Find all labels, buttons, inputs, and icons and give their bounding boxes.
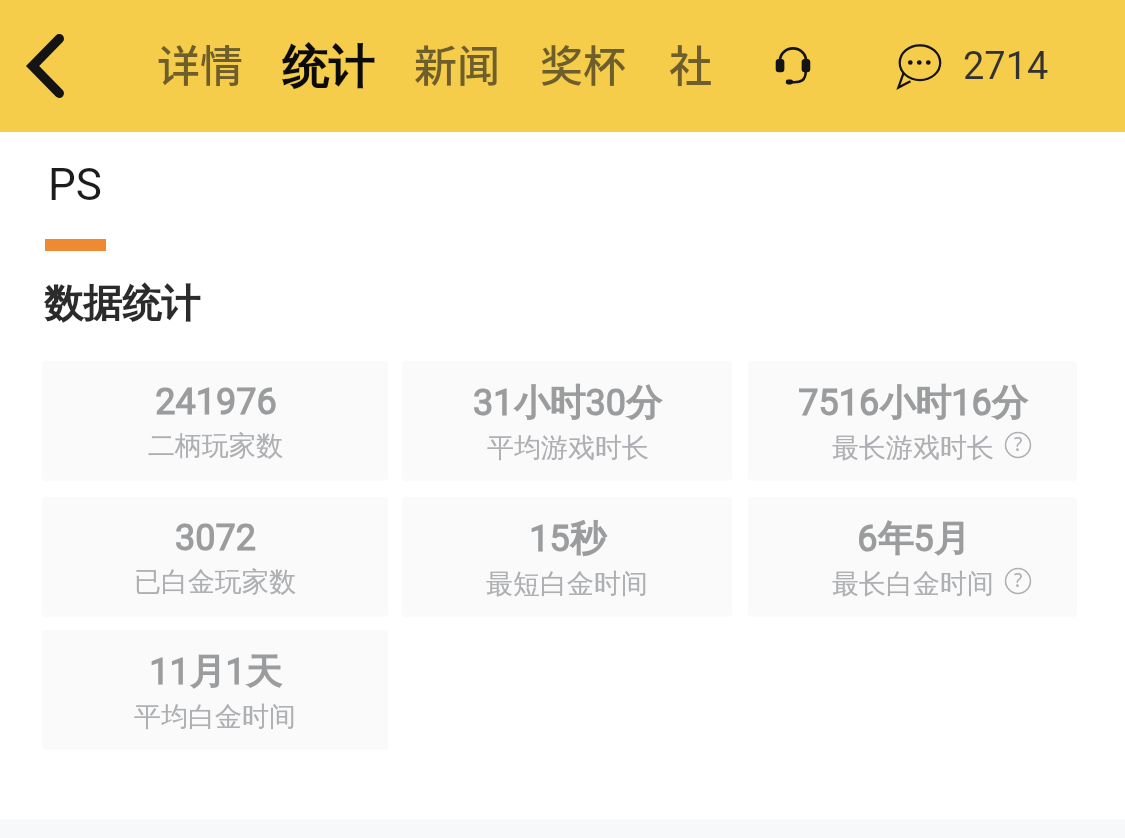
staticText: 11月1天 [149, 649, 282, 694]
staticText: 统计 [282, 39, 374, 97]
button[interactable]: 社 [664, 0, 717, 132]
button[interactable]: 新闻 [409, 0, 505, 132]
staticText: 平均游戏时长 [487, 431, 649, 465]
staticText: 241976 [155, 381, 277, 423]
button[interactable]: 统计 [277, 0, 379, 132]
button[interactable]: Help [1004, 567, 1032, 595]
button[interactable]: Help [1004, 431, 1032, 459]
button[interactable]: 2714 [879, 0, 1067, 132]
staticText: 最长游戏时长 [832, 431, 994, 465]
staticText: 已白金玩家数 [134, 565, 296, 599]
button[interactable]: 31小时30分 [402, 361, 732, 481]
staticText: 奖杯 [540, 32, 626, 94]
button[interactable]: 详情 [152, 0, 248, 132]
staticText: 社 [669, 32, 712, 94]
button[interactable]: Customer support [753, 0, 833, 131]
staticText: 数据统计 [44, 279, 200, 328]
staticText: PS [48, 159, 102, 211]
button[interactable]: 7516小时16分 [748, 361, 1077, 481]
staticText: 二柄玩家数 [148, 429, 283, 463]
button[interactable]: Back [0, 0, 97, 132]
staticText: 3072 [175, 517, 256, 559]
button[interactable]: 奖杯 [535, 0, 631, 132]
button[interactable]: 6年5月 [748, 497, 1077, 617]
staticText: ? [1014, 431, 1023, 457]
staticText: 2714 [963, 44, 1049, 89]
button[interactable]: 15秒 [402, 497, 732, 617]
staticText: 平均白金时间 [134, 700, 296, 734]
staticText: ? [1014, 567, 1023, 593]
button[interactable]: 3072 [42, 497, 388, 617]
button[interactable]: 241976 [42, 361, 388, 481]
button[interactable]: 11月1天 [42, 630, 388, 750]
staticText: 详情 [157, 32, 243, 94]
staticText: 最长白金时间 [832, 567, 994, 601]
button[interactable]: PS [39, 155, 118, 255]
staticText: 最短白金时间 [486, 567, 648, 601]
staticText: 7516小时16分 [798, 380, 1028, 425]
staticText: 31小时30分 [473, 380, 662, 425]
staticText: 6年5月 [857, 516, 970, 561]
staticText: 15秒 [529, 516, 606, 561]
staticText: 新闻 [414, 32, 500, 94]
